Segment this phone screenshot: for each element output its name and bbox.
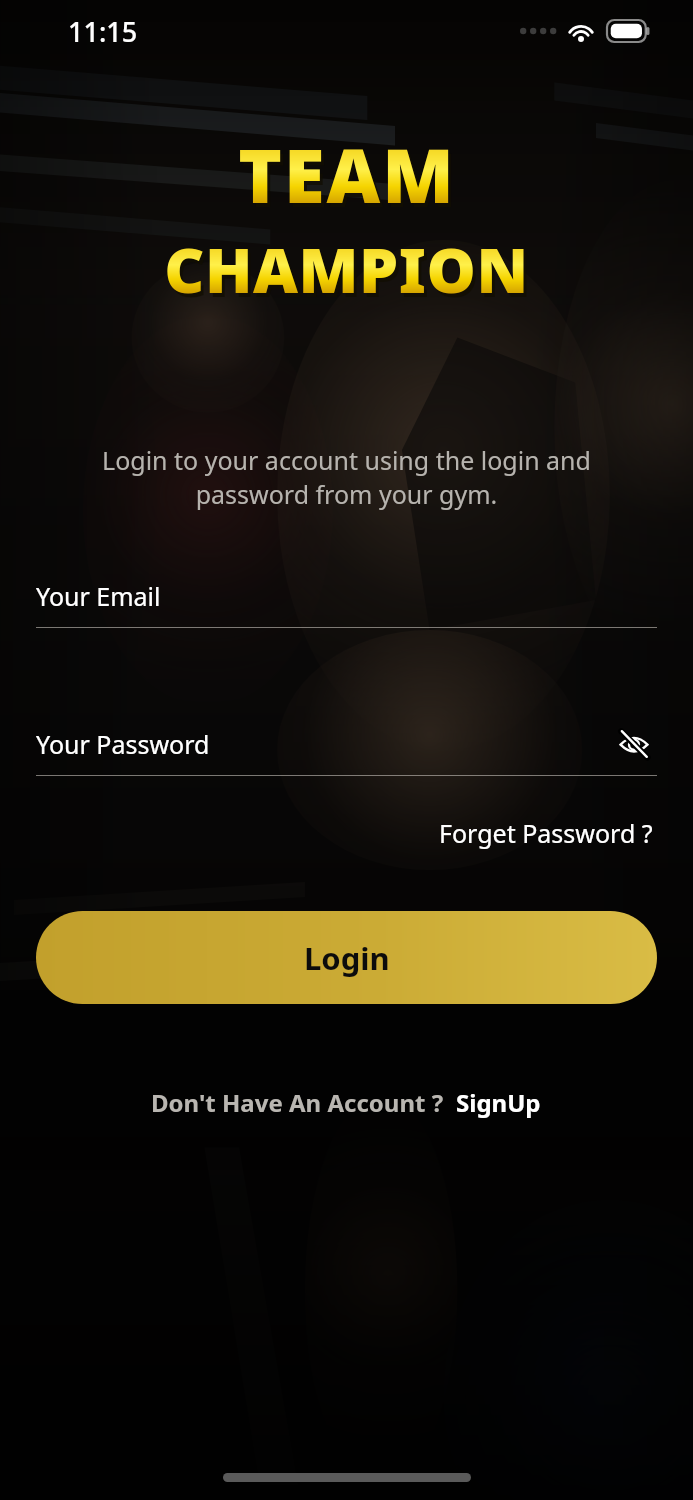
staticText: Login to your account using the login an… [30,443,663,511]
staticText: SignUp [456,1086,541,1119]
staticText: Login [304,937,390,979]
button[interactable]: Login [36,911,657,1004]
staticText: 11:15 [68,13,138,50]
button[interactable]: Show password [611,721,657,767]
staticText: Your Email [36,579,657,613]
staticText: CHAMPION [167,231,532,315]
staticText: Forget Password ? [439,816,653,850]
button[interactable]: SignUp [454,1082,543,1123]
staticText: Your Password [36,727,611,761]
staticText: TEAM [238,124,456,225]
staticText: TEAM [241,128,459,229]
button[interactable]: Forget Password ? [435,810,657,856]
staticText: Don't Have An Account ? [151,1086,444,1119]
staticText: CHAMPION [164,227,529,311]
